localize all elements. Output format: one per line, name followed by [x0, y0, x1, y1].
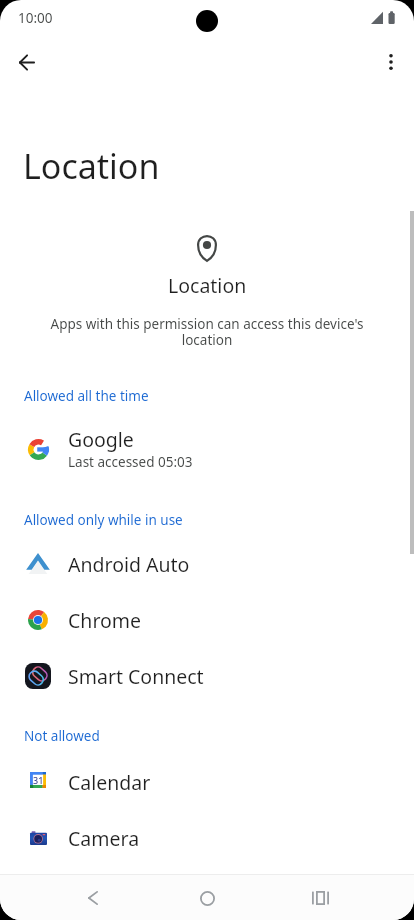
staticText: Android Auto: [68, 551, 190, 578]
staticText: 31: [33, 774, 44, 786]
button[interactable]: Smart Connect: [0, 648, 414, 704]
staticText: Not allowed: [24, 727, 100, 745]
staticText: Camera: [68, 825, 140, 852]
staticText: Chrome: [68, 607, 142, 634]
button[interactable]: More options: [369, 40, 413, 84]
button[interactable]: Android Auto: [0, 536, 414, 592]
staticText: Calendar: [68, 769, 151, 796]
button[interactable]: Recent apps: [287, 876, 353, 920]
staticText: Smart Connect: [68, 663, 204, 690]
staticText: 10:00: [18, 9, 53, 27]
staticText: Last accessed 05:03: [68, 453, 193, 471]
button[interactable]: 31: [0, 754, 414, 810]
button[interactable]: Back: [60, 876, 126, 920]
button[interactable]: Back: [5, 40, 49, 84]
button[interactable]: Chrome: [0, 592, 414, 648]
button[interactable]: Home: [174, 876, 240, 920]
button[interactable]: Google: [0, 420, 414, 476]
staticText: Location: [168, 272, 247, 299]
staticText: Allowed only while in use: [24, 511, 183, 529]
button[interactable]: Camera: [0, 810, 414, 866]
staticText: Location: [23, 143, 160, 189]
staticText: Google: [68, 426, 134, 453]
staticText: Allowed all the time: [24, 387, 149, 405]
staticText: Apps with this permission can access thi…: [36, 315, 378, 349]
